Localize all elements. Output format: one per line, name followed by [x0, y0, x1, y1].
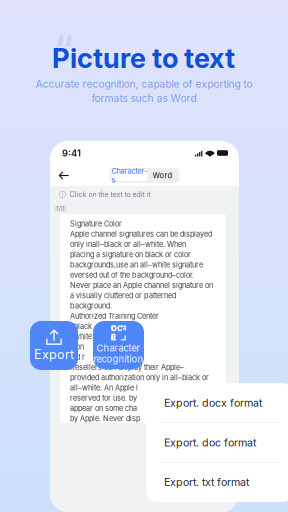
staticText: Accurate recognition, capable of exporti…: [35, 78, 252, 90]
staticText: 9:41: [62, 147, 81, 158]
staticText: “: [55, 26, 73, 73]
staticText: Export. txt format: [164, 476, 249, 488]
staticText: Export. docx format: [164, 397, 262, 409]
staticText: all–white. An Apple l: [70, 383, 138, 392]
staticText: 1/3: [56, 205, 65, 212]
staticText: background.: [70, 301, 112, 310]
staticText: Apple channel signatures can be displaye…: [70, 230, 212, 238]
staticText: Characters: [111, 167, 147, 184]
button[interactable]: Export. txt format: [146, 463, 288, 502]
staticText: Click on the text to edit it: [69, 190, 150, 199]
staticText: formats such as Word: [91, 92, 196, 104]
staticText: Resellers can display their Apple–: [70, 363, 184, 372]
staticText: thon: [70, 342, 84, 351]
staticText: –black: [70, 322, 92, 331]
staticText: a visually cluttered or patterned: [70, 291, 176, 300]
staticText: OCR: [111, 324, 126, 341]
staticText: Picture to text: [52, 42, 235, 74]
staticText: only inall–black or all–white. When: [70, 240, 186, 249]
staticText: backgrounds,use an all–white signature: [70, 260, 203, 269]
staticText: reserved for use. by: [70, 394, 137, 402]
button[interactable]: Export. docx format: [146, 383, 288, 422]
staticText: Authorized Training Center: [70, 312, 159, 320]
staticText: Signature Color: [70, 219, 122, 228]
staticText: Never place an Apple channel signature o…: [70, 281, 213, 290]
staticText: Word: [152, 171, 172, 180]
staticText: appear on some cha: [70, 404, 137, 413]
button[interactable]: OCR: [93, 321, 144, 369]
staticText: recognition: [93, 353, 143, 364]
staticText: Export: [34, 347, 74, 362]
button[interactable]: Export: [30, 321, 78, 370]
staticText: placing a signature on black or color: [70, 250, 191, 259]
staticText: Character: [96, 342, 140, 353]
button[interactable]: Characters: [111, 170, 147, 181]
staticText: by Apple. Never disp: [70, 414, 140, 423]
staticText: old r: [70, 353, 85, 361]
button[interactable]: Word: [147, 170, 177, 181]
staticText: Export. doc format: [164, 436, 256, 449]
staticText: i: [62, 191, 63, 198]
button[interactable]: Export. doc format: [146, 423, 288, 462]
staticText: eversed out of the background–color.: [70, 271, 194, 279]
staticText: –white: [70, 332, 92, 341]
button[interactable]: Back: [55, 166, 73, 184]
staticText: provided authorization only in all–black…: [70, 373, 209, 382]
